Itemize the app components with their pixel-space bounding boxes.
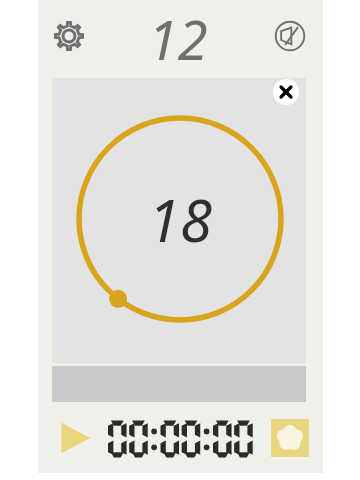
button[interactable]: Close <box>273 79 299 105</box>
button[interactable]: Mute <box>273 19 307 53</box>
button[interactable]: Play <box>55 418 95 458</box>
button[interactable]: Settings <box>52 19 86 53</box>
staticText: 18 <box>148 180 212 259</box>
staticText: 12 <box>148 2 208 76</box>
button[interactable]: Theme <box>271 419 309 457</box>
